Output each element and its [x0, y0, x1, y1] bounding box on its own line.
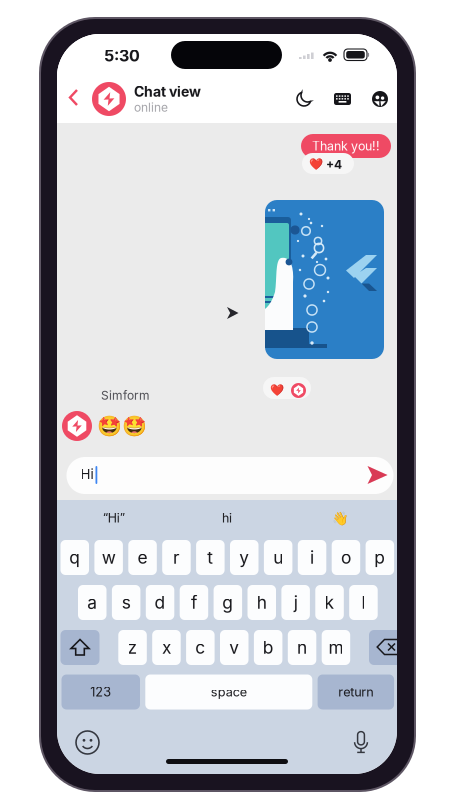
- button[interactable]: a: [78, 585, 106, 620]
- staticText: z: [127, 637, 137, 658]
- button[interactable]: 👋: [284, 501, 397, 535]
- button[interactable]: Back: [61, 81, 87, 114]
- staticText: f: [191, 592, 197, 613]
- staticText: Chat view: [134, 83, 201, 100]
- button[interactable]: Keyboard: [329, 88, 356, 110]
- button[interactable]: l: [349, 585, 378, 620]
- button[interactable]: z: [118, 630, 147, 665]
- button[interactable]: p: [366, 540, 394, 575]
- staticText: o: [341, 547, 351, 568]
- staticText: q: [69, 547, 80, 568]
- staticText: Thank you!!: [312, 138, 380, 153]
- staticText: p: [374, 547, 385, 568]
- staticText: online: [134, 100, 168, 115]
- button[interactable]: Dictate: [353, 731, 369, 754]
- staticText: k: [325, 592, 335, 613]
- staticText: i: [310, 547, 314, 568]
- staticText: hi: [222, 510, 232, 525]
- button[interactable]: v: [220, 630, 248, 665]
- staticText: 👋: [332, 510, 349, 526]
- button[interactable]: e: [128, 540, 157, 575]
- button[interactable]: o: [332, 540, 360, 575]
- staticText: ❤️: [270, 384, 284, 397]
- button[interactable]: k: [315, 585, 344, 620]
- button[interactable]: m: [322, 630, 350, 665]
- staticText: a: [87, 592, 97, 613]
- staticText: e: [138, 547, 148, 568]
- button[interactable]: Shift: [60, 630, 99, 665]
- staticText: +4: [326, 157, 342, 171]
- button[interactable]: n: [288, 630, 316, 665]
- button[interactable]: w: [94, 540, 123, 575]
- staticText: j: [294, 592, 298, 613]
- button[interactable]: q: [60, 540, 89, 575]
- button[interactable]: y: [230, 540, 258, 575]
- staticText: y: [239, 547, 249, 568]
- staticText: d: [155, 592, 166, 613]
- staticText: 5:30: [104, 46, 140, 65]
- staticText: c: [195, 637, 205, 658]
- staticText: return: [338, 684, 373, 700]
- button[interactable]: h: [247, 585, 276, 620]
- button[interactable]: b: [254, 630, 282, 665]
- button[interactable]: space: [145, 674, 312, 709]
- button[interactable]: g: [214, 585, 242, 620]
- staticText: m: [328, 637, 343, 658]
- button[interactable]: “Hi”: [57, 501, 170, 535]
- staticText: “Hi”: [103, 510, 125, 525]
- staticText: ❤️: [309, 158, 323, 171]
- button[interactable]: d: [146, 585, 174, 620]
- button[interactable]: Emoji: [76, 731, 99, 754]
- button[interactable]: t: [196, 540, 225, 575]
- button[interactable]: s: [112, 585, 140, 620]
- button[interactable]: Chat view: [92, 82, 201, 116]
- staticText: space: [211, 684, 247, 700]
- staticText: u: [273, 547, 283, 568]
- staticText: Simform: [101, 388, 150, 402]
- staticText: x: [162, 637, 171, 658]
- staticText: s: [122, 592, 131, 613]
- staticText: h: [257, 592, 267, 613]
- button[interactable]: i: [298, 540, 326, 575]
- staticText: v: [229, 637, 239, 658]
- staticText: n: [297, 637, 307, 658]
- staticText: t: [207, 547, 213, 568]
- staticText: l: [361, 592, 365, 613]
- staticText: r: [173, 547, 180, 568]
- button[interactable]: j: [281, 585, 310, 620]
- button[interactable]: c: [186, 630, 215, 665]
- staticText: 123: [90, 684, 111, 700]
- button[interactable]: hi: [170, 501, 284, 535]
- staticText: 🤩🤩: [97, 414, 147, 438]
- staticText: g: [222, 592, 233, 613]
- staticText: b: [263, 637, 274, 658]
- button[interactable]: x: [152, 630, 181, 665]
- button[interactable]: r: [162, 540, 191, 575]
- button[interactable]: return: [318, 674, 394, 709]
- button[interactable]: u: [264, 540, 292, 575]
- button[interactable]: 123: [61, 674, 140, 709]
- button[interactable]: Profile: [367, 86, 393, 112]
- button[interactable]: Delete: [369, 630, 408, 665]
- staticText: w: [102, 547, 116, 568]
- button[interactable]: Dark mode: [291, 86, 317, 112]
- button[interactable]: f: [180, 585, 208, 620]
- staticText: Hi: [80, 466, 93, 482]
- button[interactable]: Send: [359, 458, 395, 492]
